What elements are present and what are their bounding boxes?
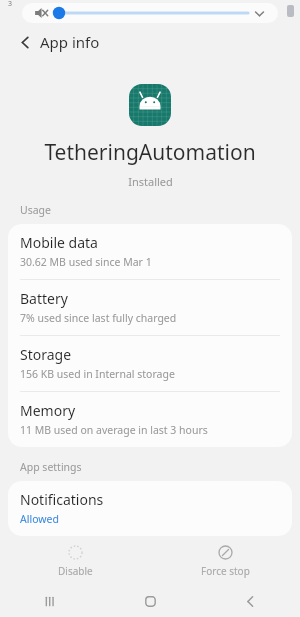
button[interactable]: Volume muted — [32, 4, 50, 22]
staticText: 30.62 MB used since Mar 1 — [20, 255, 152, 269]
button[interactable]: Back — [12, 29, 38, 55]
button[interactable]: Memory — [8, 392, 292, 447]
staticText: 156 KB used in Internal storage — [20, 367, 175, 381]
button[interactable]: Disable — [0, 541, 150, 582]
staticText: Memory — [20, 401, 76, 420]
staticText: App settings — [20, 460, 82, 474]
button[interactable]: Battery — [8, 280, 292, 335]
staticText: 3 — [8, 0, 13, 9]
staticText: Battery — [20, 289, 68, 308]
button[interactable]: Mobile data — [8, 224, 292, 279]
staticText: 11 MB used on average in last 3 hours — [20, 423, 208, 437]
button[interactable]: Volume slider — [52, 3, 248, 23]
staticText: Force stop — [201, 564, 250, 578]
button[interactable]: Recent apps — [0, 585, 100, 617]
staticText: Installed — [128, 174, 173, 189]
staticText: TetheringAutomation — [44, 138, 256, 167]
staticText: Disable — [58, 564, 93, 578]
staticText: Allowed — [20, 512, 59, 526]
button[interactable]: Force stop — [150, 541, 300, 582]
staticText: Notifications — [20, 490, 104, 509]
button[interactable]: Back — [200, 585, 300, 617]
staticText: Mobile data — [20, 233, 98, 252]
button[interactable]: Storage — [8, 336, 292, 391]
staticText: App info — [40, 32, 100, 52]
button[interactable]: Home — [100, 585, 200, 617]
button[interactable]: Expand volume panel — [250, 4, 268, 22]
staticText: Usage — [20, 203, 51, 217]
staticText: Storage — [20, 345, 72, 364]
button[interactable]: Notifications — [8, 481, 292, 536]
staticText: 7% used since last fully charged — [20, 311, 177, 325]
